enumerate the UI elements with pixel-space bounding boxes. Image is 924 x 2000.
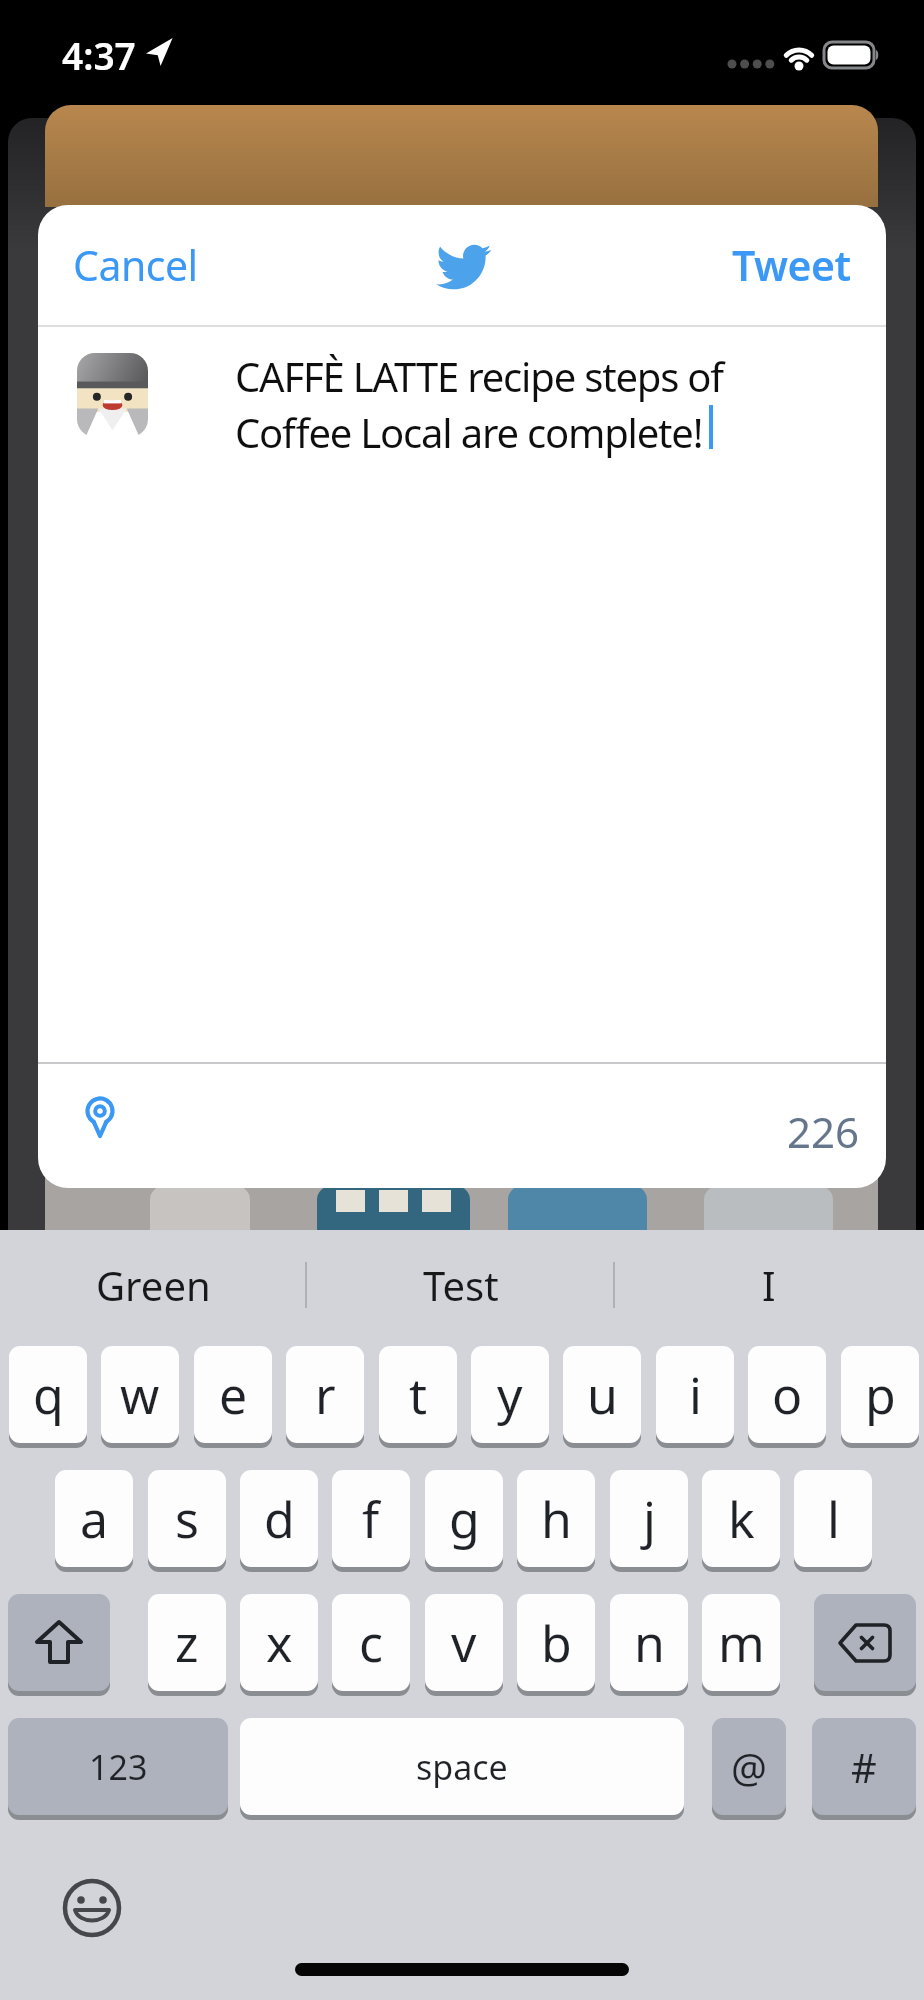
staticText: w xyxy=(120,1361,160,1429)
staticText: s xyxy=(175,1485,199,1553)
staticText: j xyxy=(643,1485,656,1553)
staticText: h xyxy=(541,1485,572,1553)
button[interactable]: p xyxy=(841,1346,919,1443)
staticText: y xyxy=(497,1361,523,1429)
staticText: CAFFÈ LATTE recipe steps of Coffee Local… xyxy=(235,349,723,460)
button[interactable]: j xyxy=(610,1470,688,1567)
button[interactable]: x xyxy=(240,1594,318,1691)
button[interactable]: m xyxy=(702,1594,780,1691)
button[interactable] xyxy=(50,1866,134,1950)
staticText: x xyxy=(266,1609,293,1677)
staticText: Test xyxy=(423,1258,499,1312)
button[interactable]: o xyxy=(748,1346,826,1443)
button[interactable]: n xyxy=(610,1594,688,1691)
staticText: k xyxy=(728,1485,755,1553)
staticText: I xyxy=(762,1258,776,1312)
button[interactable]: w xyxy=(101,1346,179,1443)
button[interactable]: k xyxy=(702,1470,780,1567)
staticText: e xyxy=(219,1361,248,1429)
staticText: g xyxy=(449,1485,480,1553)
button[interactable] xyxy=(814,1594,916,1691)
staticText: 4:37 xyxy=(62,30,136,80)
button[interactable]: Cancel xyxy=(58,225,238,305)
staticText: Tweet xyxy=(732,237,851,293)
staticText: 226 xyxy=(787,1103,860,1160)
button[interactable]: a xyxy=(55,1470,133,1567)
button[interactable]: I xyxy=(616,1248,922,1322)
staticText: d xyxy=(264,1485,295,1553)
staticText: r xyxy=(315,1361,336,1429)
button[interactable]: v xyxy=(425,1594,503,1691)
button[interactable]: l xyxy=(794,1470,872,1567)
staticText: 123 xyxy=(89,1744,148,1790)
staticText: c xyxy=(359,1609,383,1677)
button[interactable]: y xyxy=(471,1346,549,1443)
button[interactable]: f xyxy=(332,1470,410,1567)
button[interactable]: i xyxy=(656,1346,734,1443)
staticText: space xyxy=(416,1744,508,1790)
button[interactable]: g xyxy=(425,1470,503,1567)
button[interactable]: u xyxy=(563,1346,641,1443)
staticText: v xyxy=(451,1609,477,1677)
staticText: Cancel xyxy=(73,237,198,293)
staticText: i xyxy=(689,1361,702,1429)
staticText: @ xyxy=(731,1740,767,1794)
button[interactable]: @ xyxy=(712,1718,786,1815)
staticText: u xyxy=(587,1361,618,1429)
staticText: b xyxy=(541,1609,572,1677)
button[interactable] xyxy=(8,1594,110,1691)
button[interactable]: # xyxy=(812,1718,916,1815)
button[interactable]: space xyxy=(240,1718,684,1815)
staticText: n xyxy=(634,1609,665,1677)
button[interactable] xyxy=(62,1080,138,1156)
button[interactable]: z xyxy=(148,1594,226,1691)
button[interactable]: 123 xyxy=(8,1718,228,1815)
button[interactable]: r xyxy=(286,1346,364,1443)
staticText: l xyxy=(827,1485,840,1553)
staticText: f xyxy=(362,1485,380,1553)
button[interactable]: e xyxy=(194,1346,272,1443)
button[interactable]: Test xyxy=(308,1248,614,1322)
button[interactable]: Green xyxy=(0,1248,306,1322)
staticText: a xyxy=(80,1485,109,1553)
staticText: o xyxy=(772,1361,803,1429)
button[interactable]: b xyxy=(517,1594,595,1691)
button[interactable]: t xyxy=(379,1346,457,1443)
staticText: t xyxy=(409,1361,428,1429)
staticText: m xyxy=(718,1609,765,1677)
staticText: p xyxy=(865,1361,896,1429)
staticText: Green xyxy=(96,1258,211,1312)
button[interactable]: Tweet xyxy=(698,225,866,305)
button[interactable]: s xyxy=(148,1470,226,1567)
button[interactable]: d xyxy=(240,1470,318,1567)
button[interactable]: c xyxy=(332,1594,410,1691)
button[interactable]: h xyxy=(517,1470,595,1567)
staticText: z xyxy=(175,1609,199,1677)
staticText: q xyxy=(33,1361,64,1429)
button[interactable]: q xyxy=(9,1346,87,1443)
staticText: # xyxy=(851,1740,877,1794)
